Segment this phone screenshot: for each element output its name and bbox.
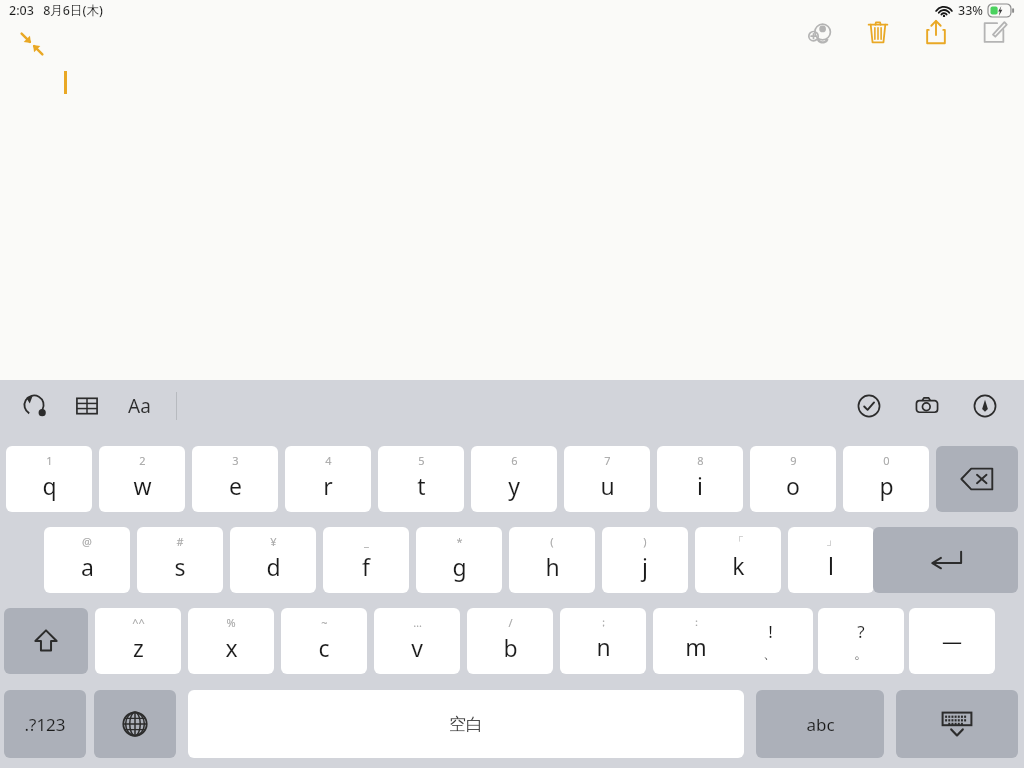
staticText: i [697,470,703,501]
button[interactable]: Table [68,387,106,425]
staticText: h [545,551,560,582]
button[interactable]: _ [323,527,409,593]
staticText: .?123 [24,713,66,736]
staticText: m [685,631,707,662]
staticText: 0 [883,453,890,468]
button[interactable]: Next keyboard [94,690,176,758]
button[interactable]: Return [873,527,1018,593]
button[interactable]: abc [756,690,884,758]
staticText: 2:03 [9,2,34,19]
button[interactable]: ^^ [95,608,181,674]
button[interactable]: 空白 [188,690,744,758]
staticText: x [225,632,238,663]
button[interactable]: ： [653,608,739,674]
staticText: a [81,551,94,582]
button[interactable]: 0 [843,446,929,512]
button[interactable]: Markup [966,387,1004,425]
staticText: 7 [604,453,611,468]
button[interactable]: Shift [4,608,88,674]
staticText: / [508,615,513,630]
button[interactable]: Camera [908,387,946,425]
button[interactable]: Delete [860,14,896,50]
staticText: j [642,551,648,582]
button[interactable]: ¥ [230,527,316,593]
button[interactable]: Collapse note [12,24,52,64]
staticText: p [879,470,894,501]
staticText: 」 [826,534,837,548]
staticText: 3 [232,453,239,468]
button[interactable]: * [416,527,502,593]
staticText: 、 [763,645,777,663]
button[interactable]: Checklist [850,387,888,425]
staticText: 4 [325,453,332,468]
staticText: 空白 [449,714,483,735]
button[interactable]: Share [918,14,954,50]
staticText: % [226,615,236,630]
staticText: 9 [790,453,797,468]
staticText: ? [857,620,865,643]
button[interactable]: 7 [564,446,650,512]
button[interactable]: New note [976,14,1012,50]
button[interactable]: 8 [657,446,743,512]
staticText: 8 [697,453,704,468]
staticText: v [411,632,423,663]
button[interactable]: — [909,608,995,674]
staticText: … [413,615,422,630]
staticText: 。 [854,645,868,663]
staticText: _ [364,534,369,549]
button[interactable]: Add people [802,14,838,50]
staticText: ¥ [270,534,277,549]
button[interactable]: … [374,608,460,674]
staticText: l [828,550,834,581]
button[interactable]: 4 [285,446,371,512]
button[interactable]: ( [509,527,595,593]
staticText: 6 [511,453,518,468]
staticText: 33% [958,2,983,19]
staticText: u [600,470,615,501]
button[interactable]: ； [560,608,646,674]
staticText: ； [598,615,609,629]
staticText: y [508,470,520,501]
staticText: ( [550,534,554,549]
staticText: 1 [46,453,53,468]
staticText: w [133,470,152,501]
staticText: t [417,470,426,501]
button[interactable]: ! [727,608,813,674]
button[interactable]: ) [602,527,688,593]
button[interactable]: 9 [750,446,836,512]
button[interactable]: Undo [16,387,54,425]
button[interactable]: 1 [6,446,92,512]
staticText: abc [806,713,835,736]
button[interactable]: # [137,527,223,593]
staticText: o [786,470,800,501]
button[interactable]: / [467,608,553,674]
button[interactable]: 3 [192,446,278,512]
button[interactable]: ~ [281,608,367,674]
button[interactable]: % [188,608,274,674]
staticText: 8月6日(木) [43,2,103,19]
staticText: 5 [418,453,425,468]
button[interactable]: Delete [936,446,1018,512]
staticText: f [362,551,370,582]
button[interactable]: 」 [788,527,874,593]
staticText: 「 [733,534,744,548]
staticText: r [323,470,333,501]
button[interactable]: 5 [378,446,464,512]
button[interactable]: Hide keyboard [896,690,1018,758]
staticText: k [732,550,745,581]
staticText: ! [768,620,773,643]
staticText: z [133,632,144,663]
button[interactable]: 6 [471,446,557,512]
button[interactable]: @ [44,527,130,593]
staticText: e [229,470,242,501]
staticText: # [176,534,184,549]
staticText: c [318,632,330,663]
button[interactable]: Aa [120,387,158,425]
button[interactable]: .?123 [4,690,86,758]
staticText: — [942,628,962,655]
staticText: q [42,470,57,501]
button[interactable]: 「 [695,527,781,593]
button[interactable]: 2 [99,446,185,512]
staticText: ) [643,534,647,549]
button[interactable]: ? [818,608,904,674]
